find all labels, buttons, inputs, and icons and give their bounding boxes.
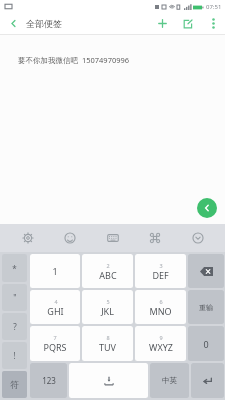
button[interactable]: Share xyxy=(175,13,201,34)
button[interactable]: 符 xyxy=(2,371,27,398)
button[interactable]: space xyxy=(69,363,148,398)
staticText: 123 xyxy=(42,375,56,386)
button[interactable]: backspace xyxy=(188,254,224,288)
staticText: 07:51 xyxy=(206,3,222,11)
staticText: * xyxy=(12,263,17,274)
button[interactable]: 全部便签 xyxy=(26,18,62,29)
staticText: 符 xyxy=(10,379,19,390)
button[interactable]: Settings xyxy=(13,224,43,252)
staticText: 要不你加我微信吧 15074970996 xyxy=(18,55,130,65)
button[interactable]: 123 xyxy=(30,363,67,398)
button[interactable]: " xyxy=(2,284,27,311)
staticText: 5 xyxy=(106,298,110,305)
staticText: PQRS xyxy=(43,341,67,353)
button[interactable]: Collapse xyxy=(197,198,217,218)
staticText: " xyxy=(13,292,17,303)
staticText: ABC xyxy=(99,269,117,281)
button[interactable]: 5 xyxy=(82,290,133,324)
staticText: 中英 xyxy=(162,376,177,385)
button[interactable]: 8 xyxy=(82,326,133,361)
button[interactable]: ! xyxy=(2,342,27,369)
staticText: GHI xyxy=(47,305,64,317)
button[interactable]: enter xyxy=(191,363,224,398)
staticText: MNO xyxy=(149,305,172,317)
button[interactable]: 6 xyxy=(135,290,186,324)
staticText: 2 xyxy=(106,262,110,269)
button[interactable]: * xyxy=(2,254,27,282)
button[interactable]: Hide keyboard xyxy=(183,224,213,252)
staticText: 9 xyxy=(159,334,163,341)
staticText: JKL xyxy=(101,305,114,317)
button[interactable]: 中英 xyxy=(150,363,189,398)
staticText: 0 xyxy=(203,338,209,350)
staticText: WXYZ xyxy=(149,341,173,353)
staticText: 1 xyxy=(52,265,58,277)
button[interactable]: Shortcuts xyxy=(140,224,170,252)
staticText: 重输 xyxy=(199,303,213,312)
staticText: 3 xyxy=(159,262,163,269)
button[interactable]: Back xyxy=(0,13,26,34)
button[interactable]: Emoji xyxy=(55,224,85,252)
staticText: ? xyxy=(13,321,17,332)
button[interactable]: 2 xyxy=(82,254,133,288)
button[interactable]: 7 xyxy=(30,326,80,361)
button[interactable]: More options xyxy=(201,13,225,34)
button[interactable]: 重输 xyxy=(188,290,224,324)
staticText: ! xyxy=(13,350,16,361)
staticText: TUV xyxy=(99,341,116,353)
staticText: 6 xyxy=(159,298,163,305)
button[interactable]: ? xyxy=(2,313,27,340)
staticText: 8 xyxy=(106,334,110,341)
staticText: 4 xyxy=(54,298,58,305)
button[interactable]: Keyboard layout xyxy=(98,224,128,252)
staticText: 7 xyxy=(53,334,57,341)
button[interactable]: 1 xyxy=(30,254,80,288)
button[interactable]: 9 xyxy=(135,326,186,361)
button[interactable]: 4 xyxy=(30,290,80,324)
staticText: DEF xyxy=(152,269,169,281)
button[interactable]: 0 xyxy=(188,326,224,361)
button[interactable]: Add note xyxy=(149,13,175,34)
button[interactable]: 3 xyxy=(135,254,186,288)
